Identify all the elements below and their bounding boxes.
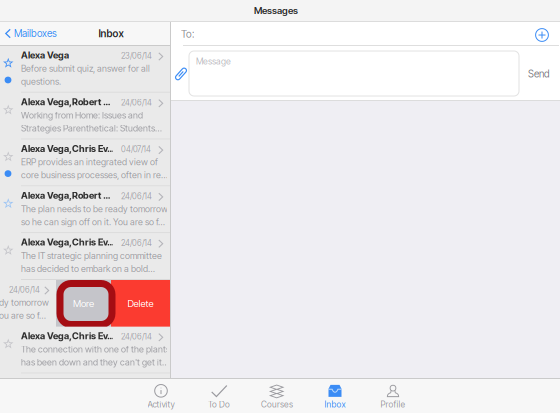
staticText: Alexa Vega,Chris Ev…	[21, 143, 114, 154]
staticText: core business processes, often in re…	[21, 170, 168, 180]
staticText: questions.	[21, 76, 61, 87]
button[interactable]: Delete	[111, 280, 170, 327]
staticText: 24/06/14	[121, 191, 152, 201]
staticText: has been down and they can't get it…	[21, 357, 169, 368]
staticText: The connection with one of the plants	[21, 344, 170, 355]
staticText: Alexa Vega,Robert …	[21, 190, 110, 201]
staticText: has decided to embark on a bold…	[21, 263, 155, 274]
staticText: 24/06/14	[121, 238, 152, 248]
button[interactable]: Attach	[173, 66, 189, 82]
staticText: The IT strategic planning committee	[21, 250, 162, 261]
staticText: ou are so f…	[0, 310, 46, 321]
staticText: Working from Home: Issues and	[21, 110, 143, 121]
button[interactable]: Alexa Vega	[0, 46, 170, 93]
staticText: Alexa Vega	[21, 49, 69, 61]
staticText: 23/06/14	[121, 51, 152, 61]
staticText: 24/06/14	[9, 285, 40, 295]
staticText: To:	[181, 28, 194, 40]
staticText: Strategies Parenthetical: Students…	[21, 123, 162, 134]
button[interactable]: Alexa Vega,Chris Ev…	[0, 327, 170, 374]
button[interactable]: Alexa Vega,Robert …	[0, 186, 170, 233]
staticText: Before submit quiz, answer for all	[21, 63, 150, 74]
button[interactable]: Add recipient	[531, 24, 553, 46]
staticText: Inbox	[98, 27, 123, 40]
staticText: Send	[528, 68, 550, 80]
button[interactable]: Activity	[132, 380, 190, 413]
staticText: ERP provides an integrated view of	[21, 157, 158, 167]
staticText: Alexa Vega,Chris Ev…	[21, 237, 114, 248]
staticText: The plan needs to be ready tomorrow	[21, 203, 168, 214]
staticText: Alexa Vega,Robert …	[21, 96, 110, 107]
button[interactable]: More	[56, 280, 111, 327]
staticText: Alexa Vega,Chris Ev…	[21, 330, 114, 341]
button[interactable]: Mailboxes	[0, 22, 57, 45]
staticText: More	[73, 298, 94, 309]
button[interactable]: To Do	[190, 380, 248, 413]
button[interactable]: Alexa Vega,Chris Ev…	[0, 233, 170, 280]
button[interactable]: Courses	[248, 380, 306, 413]
staticText: 04/07/14	[121, 145, 151, 154]
staticText: To Do	[208, 399, 230, 410]
staticText: 24/06/14	[121, 98, 152, 107]
staticText: dy tomorrow	[0, 297, 49, 308]
staticText: Messages	[254, 5, 298, 16]
staticText: 24/06/14	[121, 332, 152, 341]
staticText: Delete	[127, 298, 153, 309]
button[interactable]: Alexa Vega,Chris Ev…	[0, 140, 170, 186]
staticText: Profile	[380, 399, 405, 410]
button[interactable]: Inbox	[306, 380, 364, 413]
staticText: Activity	[147, 399, 174, 410]
staticText: Message	[196, 56, 231, 67]
staticText: Courses	[261, 399, 293, 410]
button[interactable]: Profile	[364, 380, 422, 413]
button[interactable]: Send	[521, 61, 557, 87]
staticText: Inbox	[324, 399, 345, 410]
staticText: Mailboxes	[14, 27, 57, 39]
staticText: so he can sign off on it. You are so f…	[21, 216, 165, 227]
button[interactable]: Alexa Vega,Robert …	[0, 93, 170, 140]
